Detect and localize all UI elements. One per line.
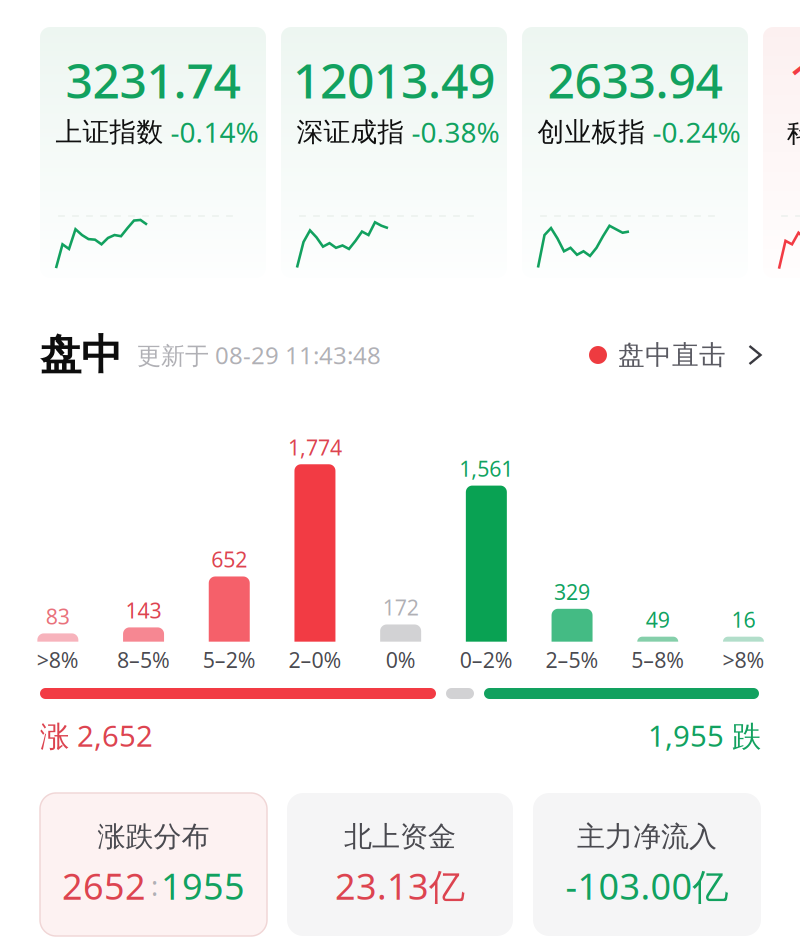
staticText: 盘中 <box>40 330 122 380</box>
button[interactable]: 12013.49 <box>281 27 507 278</box>
staticText: -0.24% <box>652 113 740 151</box>
staticText: 涨跌分布 <box>97 819 209 854</box>
staticText: 0–2% <box>460 646 513 674</box>
staticText: 16 <box>731 605 755 634</box>
button[interactable]: 北上资金 <box>287 793 513 936</box>
staticText: 更新于 08-29 11:43:48 <box>137 339 381 371</box>
staticText: >8% <box>37 646 79 674</box>
staticText: 2633.94 <box>547 48 722 112</box>
staticText: 1,955 跌 <box>648 716 761 755</box>
staticText: 652 <box>211 545 247 573</box>
staticText: -103.00亿 <box>565 862 728 910</box>
staticText: 23.13亿 <box>335 862 465 910</box>
staticText: >8% <box>722 646 764 674</box>
staticText: 盘中直击 <box>618 339 726 371</box>
staticText: 1955 <box>161 862 245 910</box>
staticText: 5–2% <box>203 646 256 674</box>
staticText: 上证指数 <box>55 116 163 148</box>
staticText: 涨 2,652 <box>40 716 153 755</box>
staticText: 北上资金 <box>344 819 456 854</box>
staticText: 2–0% <box>288 646 341 674</box>
staticText: 3231.74 <box>65 48 240 112</box>
staticText: 主力净流入 <box>577 819 717 854</box>
staticText: 49 <box>646 605 670 634</box>
staticText: 172 <box>383 593 419 621</box>
button[interactable]: 1052.77 <box>763 27 800 278</box>
staticText: 深证成指 <box>296 116 404 148</box>
staticText: 创业板指 <box>537 116 645 148</box>
staticText: -0.14% <box>170 113 258 151</box>
staticText: 8–5% <box>117 646 170 674</box>
staticText: 12013.49 <box>293 48 495 112</box>
staticText: 科创50 <box>787 114 800 150</box>
staticText: 2652 <box>62 862 146 910</box>
staticText: 1,774 <box>288 433 342 461</box>
staticText: 0% <box>386 646 416 674</box>
button[interactable]: 涨跌分布 <box>40 793 267 936</box>
staticText: 83 <box>46 602 70 630</box>
button[interactable]: 主力净流入 <box>533 793 761 936</box>
button[interactable]: 3231.74 <box>40 27 266 278</box>
staticText: 329 <box>554 577 590 606</box>
staticText: 143 <box>126 596 162 624</box>
staticText: 5–8% <box>631 646 684 674</box>
staticText: 1052.77 <box>788 48 800 112</box>
button[interactable]: 2633.94 <box>522 27 748 278</box>
staticText: -0.38% <box>411 113 499 151</box>
staticText: 1,561 <box>459 454 513 482</box>
button[interactable]: 盘中直击 <box>589 339 763 371</box>
staticText: : <box>151 868 158 903</box>
staticText: 2–5% <box>546 646 599 674</box>
